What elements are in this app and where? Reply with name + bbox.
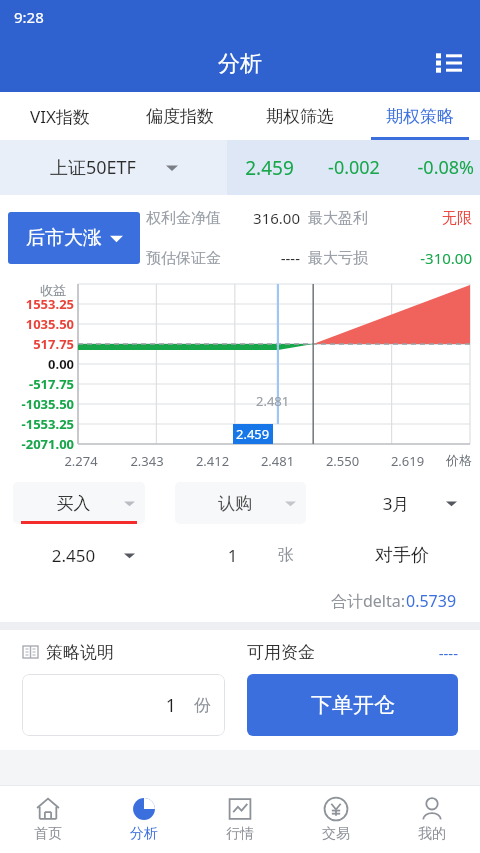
staticText: 策略说明 <box>46 642 114 663</box>
button[interactable]: 买入 <box>13 482 145 524</box>
button[interactable]: 偏度指数 <box>120 92 240 140</box>
staticText: -0.08% <box>396 155 474 180</box>
staticText: 可用资金 <box>247 642 315 663</box>
button[interactable]: 1 <box>22 674 225 736</box>
staticText: 2.459 <box>236 425 270 443</box>
button[interactable]: 上证50ETF <box>0 140 227 195</box>
staticText: -0.002 <box>312 155 396 180</box>
button[interactable]: 我的 <box>384 785 480 853</box>
staticText: 0.00 <box>0 355 74 373</box>
staticText: 最大盈利 <box>308 209 378 228</box>
staticText: 2.550 <box>310 452 375 470</box>
staticText: 后市大涨 <box>26 226 102 250</box>
staticText: 2.481 <box>245 452 310 470</box>
staticText: 期权筛选 <box>266 106 334 127</box>
staticText: 行情 <box>226 825 254 843</box>
staticText: 3月 <box>346 492 446 515</box>
staticText: VIX指数 <box>30 105 90 128</box>
button[interactable]: 期权策略 <box>360 92 480 140</box>
staticText: -517.75 <box>0 375 74 393</box>
staticText: 买入 <box>23 493 124 514</box>
staticText: 0.5739 <box>406 590 457 612</box>
staticText: -2071.00 <box>0 435 74 453</box>
staticText: 2.450 <box>23 544 124 567</box>
staticText: ---- <box>315 643 458 663</box>
staticText: 2.343 <box>114 452 180 470</box>
button[interactable]: 2.450 <box>13 534 145 576</box>
button[interactable]: 3月 <box>336 482 467 524</box>
button[interactable]: 交易 <box>288 785 384 853</box>
staticText: 预估保证金 <box>146 249 232 268</box>
staticText: -1553.25 <box>0 415 74 433</box>
staticText: 期权策略 <box>386 106 454 127</box>
staticText: 2.481 <box>256 392 290 410</box>
staticText: 我的 <box>418 825 446 843</box>
button[interactable]: 分析 <box>96 785 192 853</box>
staticText: 交易 <box>322 825 350 843</box>
button[interactable]: 期权筛选 <box>240 92 360 140</box>
staticText: 价格 <box>440 452 478 468</box>
staticText: 1553.25 <box>0 295 74 313</box>
staticText: 2.274 <box>48 452 114 470</box>
staticText: 认购 <box>185 493 285 514</box>
button[interactable]: 策略说明 <box>22 642 114 663</box>
staticText: 收益 <box>40 282 66 298</box>
button[interactable]: 1 <box>175 534 306 576</box>
staticText: 1035.50 <box>0 315 74 333</box>
staticText: -310.00 <box>378 248 472 268</box>
staticText: 316.00 <box>232 208 300 228</box>
staticText: 2.459 <box>227 155 312 181</box>
button[interactable]: 行情 <box>192 785 288 853</box>
staticText: 1 <box>187 544 278 567</box>
staticText: 权利金净值 <box>146 209 232 228</box>
staticText: 对手价 <box>375 544 429 567</box>
staticText: 首页 <box>34 825 62 843</box>
button[interactable]: 对手价 <box>336 534 467 576</box>
staticText: 偏度指数 <box>146 106 214 127</box>
button[interactable]: 下单开仓 <box>247 674 458 736</box>
staticText: 9:28 <box>14 7 44 27</box>
staticText: 2.619 <box>375 452 440 470</box>
button[interactable]: 首页 <box>0 785 96 853</box>
staticText: -1035.50 <box>0 395 74 413</box>
button[interactable]: 菜单 <box>432 46 466 80</box>
staticText: 2.412 <box>180 452 245 470</box>
staticText: 下单开仓 <box>311 692 395 718</box>
staticText: 517.75 <box>0 335 74 353</box>
button[interactable]: 后市大涨 <box>8 212 140 264</box>
staticText: 张 <box>278 545 294 565</box>
staticText: 无限 <box>378 209 472 228</box>
staticText: 上证50ETF <box>50 155 136 180</box>
staticText: 合计delta: <box>331 590 406 612</box>
staticText: 1 <box>36 693 176 718</box>
staticText: 分析 <box>218 50 262 78</box>
button[interactable]: VIX指数 <box>0 92 120 140</box>
staticText: 份 <box>194 695 211 716</box>
button[interactable]: 认购 <box>175 482 306 524</box>
staticText: ---- <box>232 248 300 268</box>
staticText: 最大亏损 <box>308 249 378 268</box>
staticText: 分析 <box>130 825 158 843</box>
